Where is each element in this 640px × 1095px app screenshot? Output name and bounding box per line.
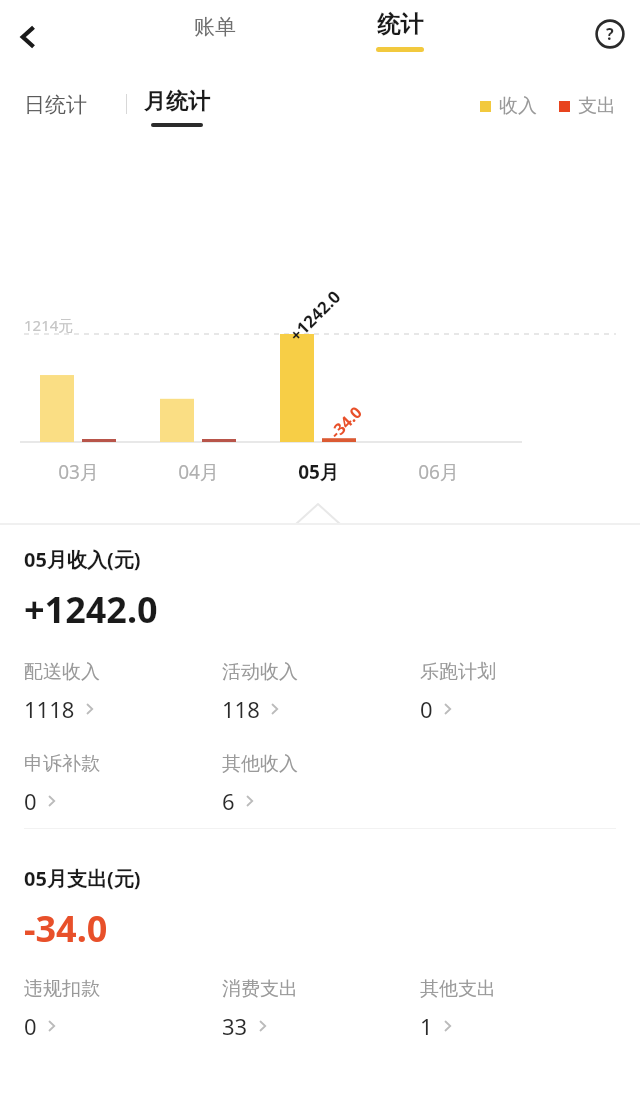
button[interactable]: 04月	[158, 459, 238, 485]
staticText: 0	[24, 786, 37, 816]
staticText: 05月收入(元)	[24, 546, 141, 573]
staticText: ?	[606, 23, 614, 45]
button[interactable]: 违规扣款	[24, 977, 108, 1043]
staticText: 1214元	[24, 315, 74, 335]
staticText: 33	[222, 1011, 248, 1041]
staticText: 消费支出	[222, 977, 298, 1001]
staticText: 03月	[58, 459, 99, 485]
button[interactable]: 乐跑计划	[420, 660, 504, 726]
button[interactable]: 申诉补款	[24, 752, 108, 818]
staticText: 收入	[499, 94, 537, 118]
button[interactable]: 账单	[186, 10, 244, 44]
staticText: 1	[420, 1011, 433, 1041]
button[interactable]: 其他收入	[222, 752, 306, 818]
button[interactable]: 活动收入	[222, 660, 306, 726]
button[interactable]: 03月	[38, 459, 118, 485]
button[interactable]: Back	[0, 9, 56, 65]
staticText: 其他支出	[420, 977, 496, 1001]
staticText: 月统计	[144, 88, 210, 116]
staticText: 1118	[24, 694, 75, 724]
staticText: -34.0	[325, 401, 367, 443]
button[interactable]: 日统计	[16, 88, 95, 122]
staticText: 0	[420, 694, 433, 724]
staticText: 配送收入	[24, 660, 100, 684]
staticText: 账单	[194, 14, 236, 40]
staticText: +1242.0	[24, 585, 158, 634]
staticText: 支出	[578, 94, 616, 118]
button[interactable]: 05月	[278, 459, 358, 485]
button[interactable]: 月统计	[136, 86, 218, 129]
staticText: 日统计	[24, 92, 87, 118]
button[interactable]: 配送收入	[24, 660, 108, 726]
staticText: 0	[24, 1011, 37, 1041]
staticText: -34.0	[24, 904, 108, 953]
staticText: 04月	[178, 459, 219, 485]
staticText: 05月支出(元)	[24, 865, 141, 892]
staticText: 其他收入	[222, 752, 298, 776]
button[interactable]: 其他支出	[420, 977, 504, 1043]
staticText: 6	[222, 786, 235, 816]
staticText: 申诉补款	[24, 752, 100, 776]
button[interactable]: 06月	[398, 459, 478, 485]
button[interactable]: 统计	[368, 8, 432, 54]
staticText: 违规扣款	[24, 977, 100, 1001]
staticText: 乐跑计划	[420, 660, 496, 684]
staticText: +1242.0	[284, 285, 346, 346]
staticText: 统计	[377, 10, 423, 39]
staticText: 118	[222, 694, 260, 724]
staticText: 06月	[418, 459, 459, 485]
staticText: 活动收入	[222, 660, 298, 684]
staticText: 05月	[298, 459, 339, 485]
button[interactable]: 消费支出	[222, 977, 306, 1043]
button[interactable]: Help	[580, 4, 640, 64]
